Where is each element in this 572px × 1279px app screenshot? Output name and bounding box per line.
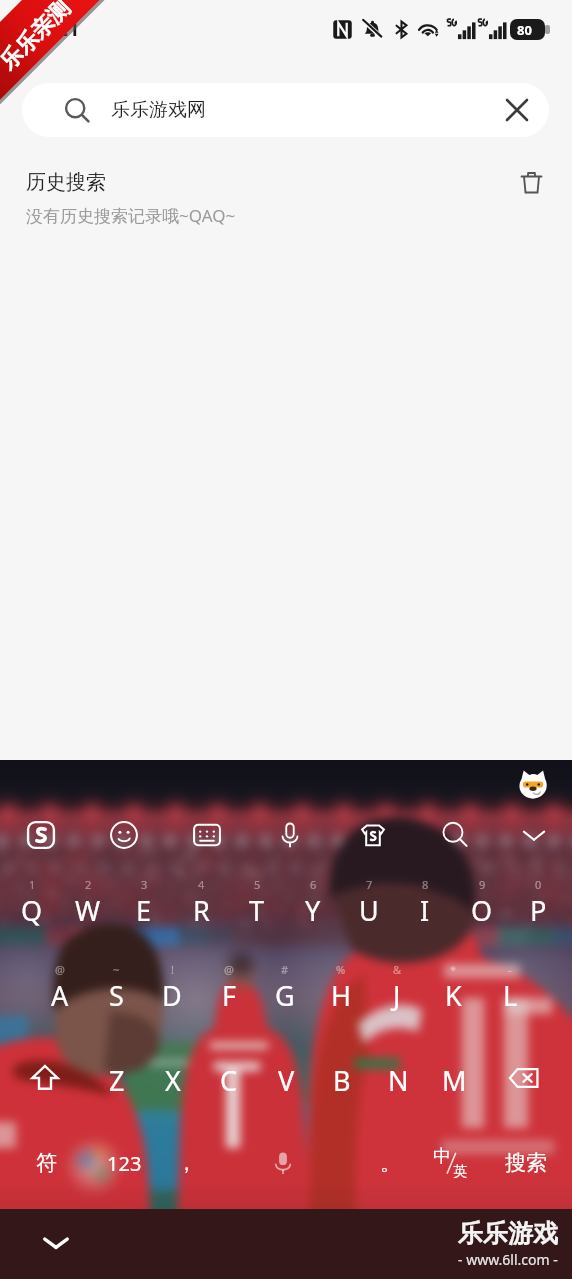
button[interactable]: 123 — [90, 1137, 158, 1189]
button[interactable]: E — [116, 884, 172, 936]
button[interactable]: Clear history — [514, 165, 548, 199]
staticText: 乐乐游戏网 — [111, 98, 206, 122]
staticText: 3 — [141, 877, 148, 892]
staticText: 符 — [36, 1150, 57, 1176]
button[interactable]: Search — [433, 813, 477, 857]
staticText: 6 — [310, 877, 317, 892]
staticText: V — [278, 1062, 295, 1099]
button[interactable]: A — [32, 969, 88, 1021]
button[interactable]: F — [201, 969, 257, 1021]
staticText: 。 — [380, 1150, 401, 1176]
staticText: E — [136, 892, 152, 929]
button[interactable]: 符 — [12, 1137, 80, 1189]
button[interactable]: Z — [89, 1054, 145, 1106]
staticText: H — [331, 977, 352, 1014]
button[interactable]: L — [482, 969, 538, 1021]
staticText: * — [450, 962, 457, 977]
staticText: Q — [21, 892, 43, 929]
button[interactable]: Y — [285, 884, 341, 936]
button[interactable]: Backspace — [498, 1052, 550, 1104]
staticText: @ — [224, 962, 234, 977]
staticText: % — [336, 962, 346, 977]
staticText: - www.6ll.com - — [458, 1250, 558, 1269]
staticText: K — [445, 977, 462, 1014]
staticText: Z — [109, 1062, 125, 1099]
button[interactable]: 。 — [356, 1137, 424, 1189]
staticText: 1 — [29, 877, 36, 892]
button[interactable]: R — [173, 884, 229, 936]
staticText: Y — [305, 892, 321, 929]
staticText: 5 — [254, 877, 261, 892]
staticText: 7 — [366, 877, 373, 892]
button[interactable]: K — [425, 969, 481, 1021]
staticText: S — [109, 977, 124, 1014]
button[interactable]: G — [257, 969, 313, 1021]
button[interactable]: Assistant — [514, 766, 552, 804]
staticText: - — [508, 962, 512, 977]
staticText: 搜索 — [505, 1150, 547, 1176]
button[interactable]: U — [341, 884, 397, 936]
button[interactable]: D — [144, 969, 200, 1021]
staticText: ~ — [113, 962, 120, 977]
button[interactable]: I — [397, 884, 453, 936]
button[interactable]: C — [201, 1054, 257, 1106]
button[interactable]: M — [426, 1054, 482, 1106]
button[interactable]: Q — [4, 884, 60, 936]
button[interactable]: Keypad layout — [185, 813, 229, 857]
staticText: P — [530, 892, 547, 929]
staticText: 中 — [433, 1145, 451, 1168]
staticText: ! — [171, 962, 174, 977]
button[interactable]: H — [313, 969, 369, 1021]
button[interactable]: 搜索 — [492, 1137, 560, 1189]
staticText: 123 — [107, 1150, 142, 1177]
button[interactable]: W — [60, 884, 116, 936]
button[interactable]: Emoji — [102, 813, 146, 857]
button[interactable]: O — [454, 884, 510, 936]
button[interactable]: T — [229, 884, 285, 936]
staticText: M — [442, 1062, 467, 1099]
button[interactable]: Shift — [19, 1052, 71, 1104]
staticText: X — [165, 1062, 181, 1099]
staticText: 4 — [198, 877, 205, 892]
staticText: 英 — [453, 1163, 467, 1181]
staticText: I — [420, 892, 430, 929]
staticText: D — [162, 977, 182, 1014]
staticText: O — [471, 892, 493, 929]
staticText: B — [333, 1062, 351, 1099]
button[interactable]: Clear — [491, 84, 543, 136]
staticText: 0 — [535, 877, 542, 892]
button[interactable]: Hide keyboard — [34, 1221, 78, 1265]
button[interactable]: Voice input — [257, 1137, 309, 1189]
staticText: L — [503, 977, 518, 1014]
button[interactable]: J — [369, 969, 425, 1021]
staticText: 乐乐游戏 — [458, 1218, 558, 1249]
staticText: ， — [176, 1150, 197, 1176]
staticText: # — [281, 962, 289, 977]
button[interactable]: Voice input — [268, 813, 312, 857]
button[interactable]: Themes — [351, 813, 395, 857]
staticText: 80 — [517, 21, 532, 39]
button[interactable]: Switch Chinese English — [417, 1137, 485, 1189]
button[interactable]: B — [314, 1054, 370, 1106]
button[interactable]: 乐乐游戏网 — [22, 83, 549, 137]
button[interactable]: Collapse toolbar — [512, 813, 556, 857]
staticText: F — [222, 977, 237, 1014]
button[interactable]: N — [370, 1054, 426, 1106]
staticText: J — [393, 977, 401, 1014]
staticText: 没有历史搜索记录哦~QAQ~ — [26, 204, 236, 227]
staticText: G — [275, 977, 295, 1014]
button[interactable]: S — [88, 969, 144, 1021]
staticText: U — [359, 892, 379, 929]
staticText: T — [249, 892, 265, 929]
staticText: N — [388, 1062, 409, 1099]
button[interactable]: V — [258, 1054, 314, 1106]
staticText: 9 — [479, 877, 486, 892]
button[interactable]: ， — [152, 1137, 220, 1189]
button[interactable]: Sogou input — [19, 813, 63, 857]
staticText: C — [220, 1062, 238, 1099]
button[interactable]: X — [145, 1054, 201, 1106]
staticText: 历史搜索 — [26, 170, 106, 195]
staticText: @ — [55, 962, 65, 977]
button[interactable]: P — [510, 884, 566, 936]
staticText: A — [51, 977, 69, 1014]
